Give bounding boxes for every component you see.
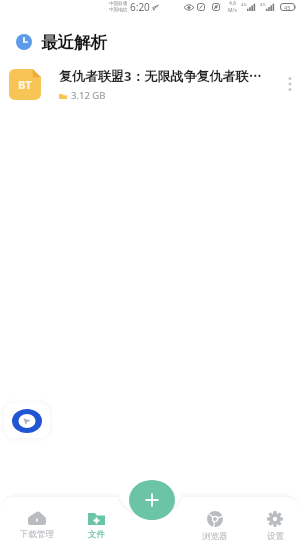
staticText: 4G (241, 2, 247, 8)
staticText: M/s (228, 7, 237, 14)
staticText: 中国电信 (109, 7, 128, 13)
staticText: 4G (260, 2, 266, 8)
button[interactable]: 文件 (70, 508, 122, 542)
button[interactable]: Floating app (4, 403, 50, 438)
staticText: BT (18, 77, 32, 92)
button[interactable]: 下载管理 (11, 508, 63, 542)
staticText: 下载管理 (20, 529, 54, 540)
staticText: 中国联通 (109, 1, 128, 7)
button[interactable]: Add (129, 480, 175, 520)
staticText: 浏览器 (202, 531, 228, 542)
staticText: 6:20 (130, 0, 150, 14)
staticText: 45 (284, 4, 291, 11)
staticText: 文件 (88, 529, 105, 540)
staticText: 设置 (267, 531, 284, 542)
button[interactable]: More options (282, 67, 298, 101)
button[interactable]: 设置 (249, 508, 300, 542)
button[interactable]: 浏览器 (189, 508, 241, 542)
staticText: 4.6 (229, 0, 237, 7)
staticText: 3.12 GB (71, 89, 106, 102)
button[interactable]: BT (0, 62, 300, 106)
staticText: 最近解析 (41, 32, 107, 53)
staticText: 复仇者联盟3：无限战争复仇者联盟3：无限战争 (59, 67, 262, 85)
